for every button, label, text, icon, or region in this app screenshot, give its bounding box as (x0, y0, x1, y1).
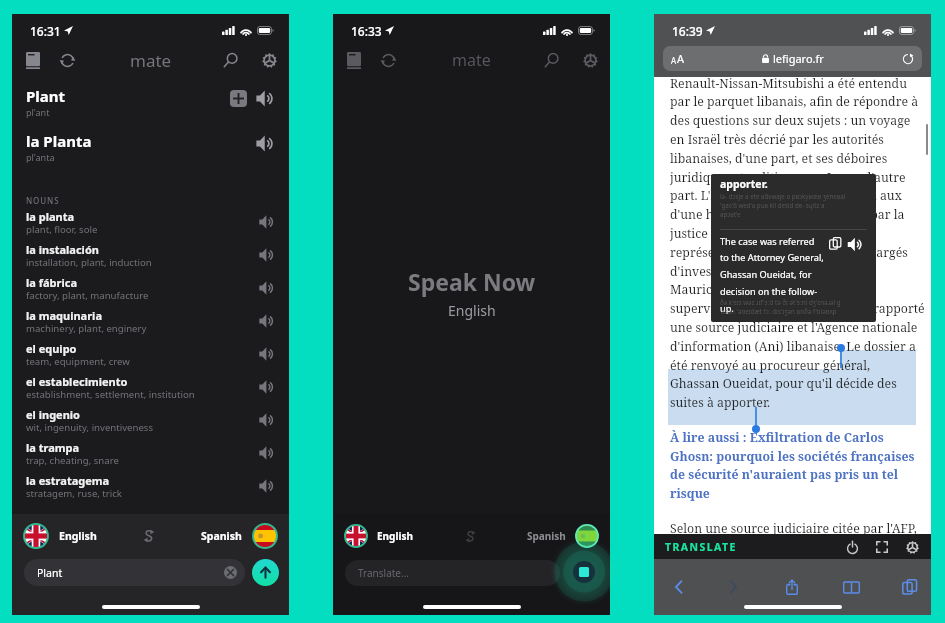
staticText: justice française qui s'était fait (670, 225, 848, 242)
button[interactable]: Search (218, 47, 244, 73)
button[interactable]: la maquinaria (12, 304, 289, 337)
button[interactable]: Play pronunciation (258, 345, 276, 363)
button[interactable]: Power (841, 536, 863, 558)
staticText: Speak Now (408, 266, 536, 297)
button[interactable]: Translate... (345, 560, 560, 586)
button[interactable]: Settings (577, 47, 603, 73)
button[interactable]: Spanish (527, 524, 599, 548)
button[interactable]: Spanish (201, 523, 278, 549)
button[interactable]: Swap languages (137, 524, 161, 548)
button[interactable]: Add to dictionary (230, 90, 247, 107)
staticText: 16:33 (351, 23, 382, 39)
staticText: À lire aussi : Exfiltration de Carlos (670, 429, 884, 446)
staticText: d'information (Ani) libanaise. Le dossie… (670, 338, 916, 355)
staticText: apporter. (720, 177, 768, 191)
staticText: la Planta (26, 131, 92, 151)
button[interactable]: Settings (901, 536, 923, 558)
button[interactable]: Dictionary (341, 47, 367, 73)
button[interactable]: Play pronunciation (258, 246, 276, 264)
button[interactable]: Settings (256, 47, 282, 73)
button[interactable]: Speak (847, 236, 864, 253)
button[interactable]: Sync (54, 47, 80, 73)
button[interactable]: Copy (829, 237, 842, 250)
staticText: Spanish (527, 529, 566, 543)
staticText: la trampa (26, 440, 80, 455)
button[interactable]: el establecimiento (12, 370, 289, 403)
staticText: lə- dɔsje a ete ʁɑ̃vwaje o pʁɔkyʁœʁ ʒene… (720, 192, 846, 219)
button[interactable]: Share (775, 570, 809, 604)
staticText: Ghosn: pourquoi les sociétés françaises (670, 448, 915, 465)
staticText: Plant (26, 86, 66, 106)
staticText: des questions sur deux sujets : un voyag… (670, 112, 911, 129)
button[interactable]: Bookmarks (834, 570, 868, 604)
button[interactable]: la Planta (12, 120, 289, 165)
button[interactable]: Plant (12, 75, 289, 120)
button[interactable]: la instalación (12, 238, 289, 271)
staticText: Mauricio, le tout sous l'étroite (670, 281, 844, 298)
button[interactable]: Search (539, 47, 565, 73)
staticText: English (59, 529, 97, 543)
button[interactable]: Tabs (893, 570, 927, 604)
staticText: Ghassan Oueidat, pour qu'il décide des (670, 375, 897, 392)
staticText: supervision du parquet libanais, a rappo… (670, 300, 925, 317)
staticText: A (677, 51, 685, 66)
staticText: factory, plant, manufacture (26, 289, 149, 302)
staticText: 16:31 (30, 23, 61, 39)
staticText: plant, floor, sole (26, 223, 98, 236)
button[interactable]: English (344, 524, 413, 548)
button[interactable]: la trampa (12, 436, 289, 469)
button[interactable]: Play pronunciation (255, 133, 276, 154)
button[interactable]: Play pronunciation (258, 378, 276, 396)
button[interactable]: Swap languages (459, 525, 481, 547)
staticText: mate (130, 49, 172, 72)
button[interactable]: Plant (24, 559, 245, 586)
button[interactable]: la estratagema (12, 469, 289, 502)
staticText: The case was referred to the Attorney Ge… (720, 235, 824, 315)
button[interactable]: Play pronunciation (258, 477, 276, 495)
button[interactable]: Play pronunciation (255, 88, 276, 109)
staticText: représenter par deux magistrats chargés (670, 244, 908, 261)
staticText: lefigaro.fr (773, 51, 824, 66)
button[interactable]: Dictionary (20, 47, 46, 73)
button[interactable]: el ingenio (12, 403, 289, 436)
staticText: el equipo (26, 341, 77, 356)
staticText: d'une heure aux questions posées par la (670, 206, 905, 223)
button[interactable]: Stop recording (573, 561, 595, 583)
staticText: machinery, plant, enginery (26, 322, 147, 335)
button[interactable]: Expand (871, 536, 893, 558)
staticText: libanaises, d'une part, et ses déboires (670, 150, 888, 167)
staticText: stratagem, ruse, trick (26, 487, 122, 500)
button[interactable]: English (23, 523, 97, 549)
button[interactable]: Play pronunciation (258, 279, 276, 297)
staticText: installation, plant, induction (26, 256, 152, 269)
staticText: suites à apporter. (670, 394, 771, 411)
staticText: Renault-Nissan-Mitsubishi a été entendu (670, 75, 907, 92)
staticText: risque (670, 485, 710, 502)
staticText: par le parquet libanais, afin de répondr… (670, 93, 919, 110)
button[interactable]: Translate (252, 559, 279, 586)
staticText: TRANSLATE (665, 540, 737, 554)
button[interactable]: la fábrica (12, 271, 289, 304)
staticText: part. L'homme d'affaires a répondu aux (670, 187, 902, 204)
button[interactable]: el equipo (12, 337, 289, 370)
button[interactable]: Back (662, 570, 696, 604)
staticText: Plant (37, 566, 224, 580)
button[interactable]: Play pronunciation (258, 411, 276, 429)
button[interactable]: A (663, 46, 922, 71)
staticText: establishment, settlement, institution (26, 388, 195, 401)
button[interactable]: Play pronunciation (258, 444, 276, 462)
button[interactable]: Sync (375, 47, 401, 73)
button[interactable]: Play pronunciation (258, 213, 276, 231)
staticText: team, equipment, crew (26, 355, 130, 368)
staticText: en Israël très décrié par les autorités (670, 131, 884, 148)
button[interactable]: Play pronunciation (258, 312, 276, 330)
staticText: wit, ingenuity, inventiveness (26, 421, 154, 434)
button[interactable]: Clear (224, 566, 237, 579)
staticText: NOUNS (26, 195, 60, 206)
staticText: Translate... (358, 566, 410, 580)
button[interactable]: la planta (12, 205, 289, 238)
staticText: été renvoyé au procureur général, (670, 357, 871, 374)
staticText: Selon une source judiciaire citée par l'… (670, 520, 917, 537)
staticText: la planta (26, 209, 75, 224)
